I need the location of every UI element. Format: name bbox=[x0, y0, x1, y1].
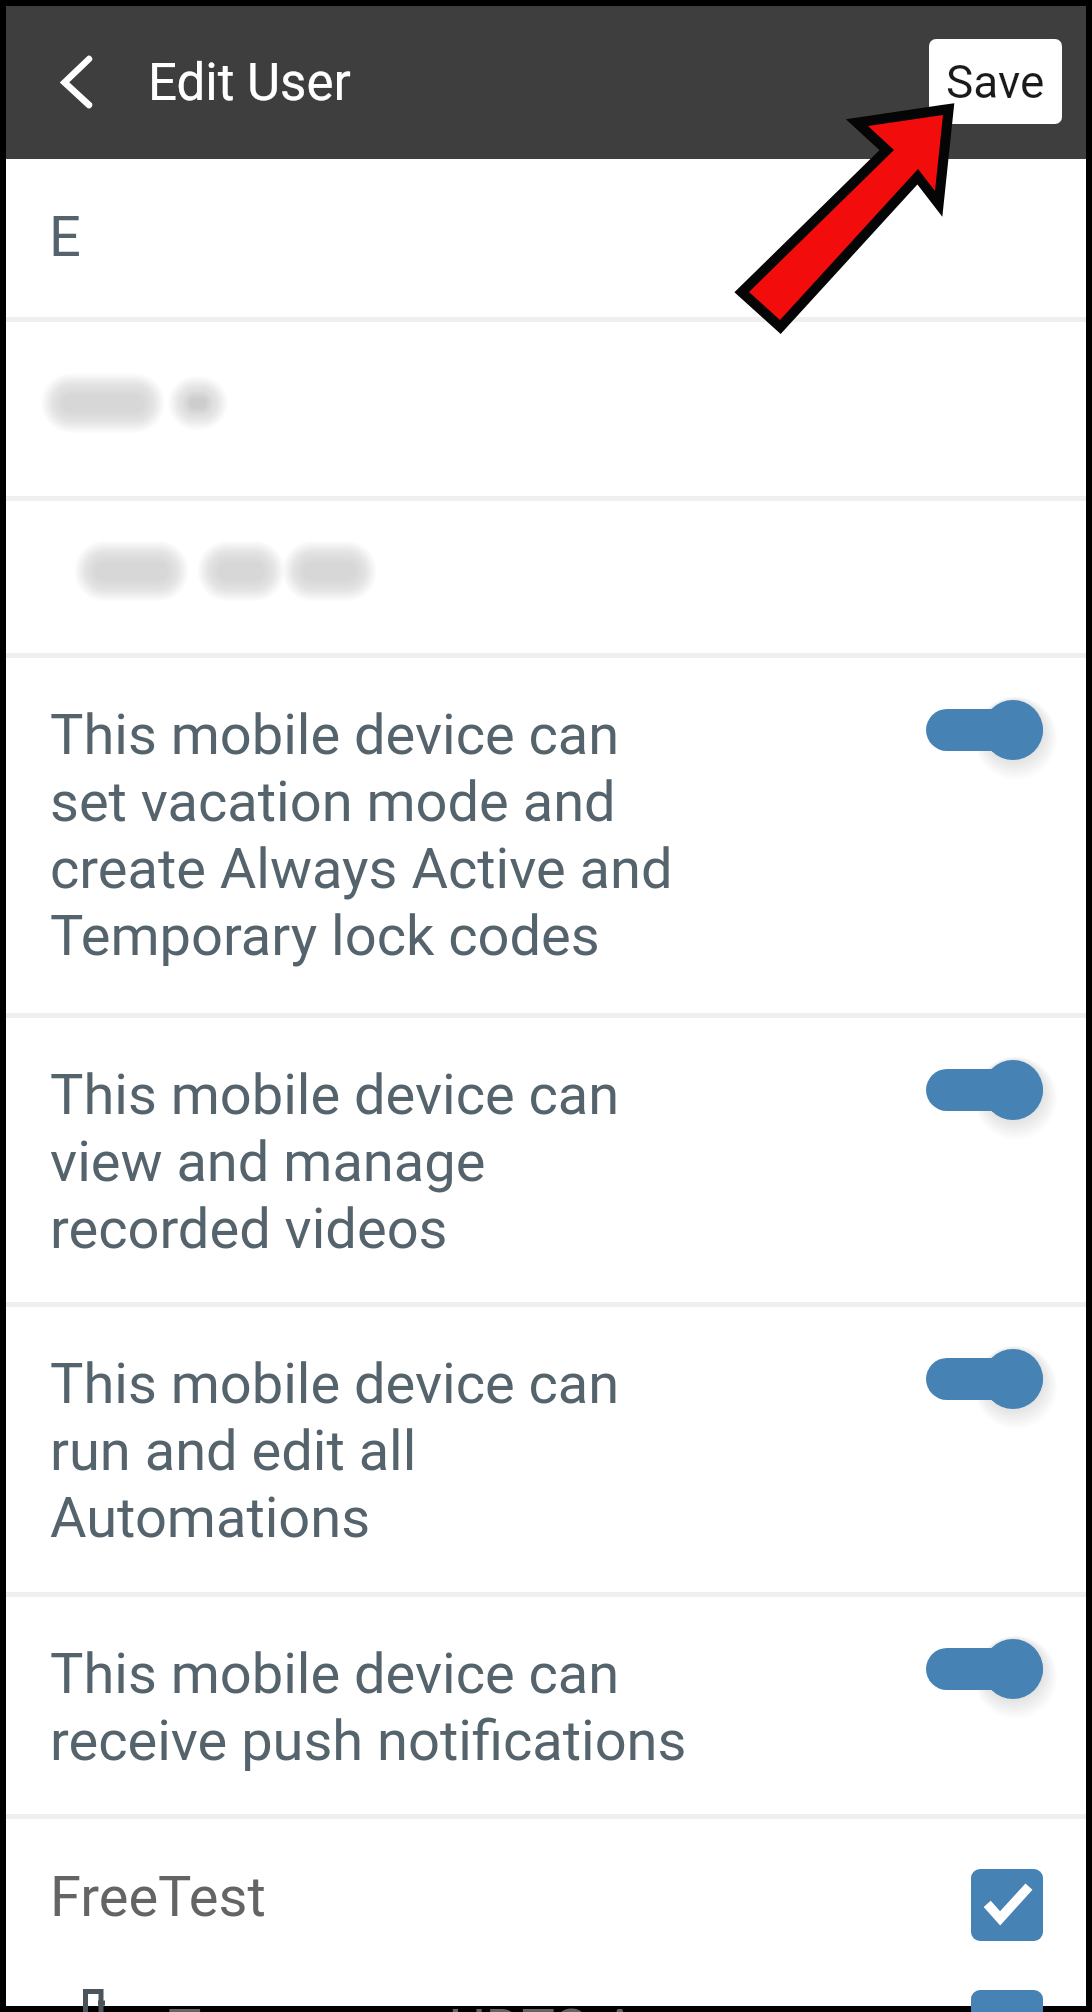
staticText: This mobile device can view and manage r… bbox=[50, 1062, 698, 1262]
button[interactable] bbox=[6, 501, 1086, 653]
staticText: Save bbox=[946, 55, 1045, 109]
button[interactable]: Save bbox=[929, 39, 1062, 124]
staticText: Edit User bbox=[148, 53, 351, 113]
button[interactable]: This mobile device can set vacation mode… bbox=[6, 658, 1086, 1013]
button[interactable]: This mobile device can view and manage r… bbox=[6, 1018, 1086, 1302]
staticText: This mobile device can receive push noti… bbox=[50, 1641, 698, 1774]
button[interactable]: This mobile device can receive push noti… bbox=[6, 1597, 1086, 1814]
button[interactable]: Temporary access checkbox bbox=[971, 1990, 1043, 2012]
button[interactable]: Temporary UDTS Access bbox=[6, 1975, 1086, 2006]
button[interactable] bbox=[6, 322, 1086, 496]
button[interactable]: FreeTest checkbox bbox=[971, 1869, 1043, 1941]
staticText: This mobile device can set vacation mode… bbox=[50, 702, 698, 969]
staticText: This mobile device can run and edit all … bbox=[50, 1351, 698, 1551]
button[interactable]: Back bbox=[24, 22, 124, 143]
button[interactable]: FreeTest bbox=[6, 1819, 1086, 1975]
button[interactable]: This mobile device can run and edit all … bbox=[6, 1307, 1086, 1592]
button[interactable]: E bbox=[6, 159, 1086, 317]
staticText: Temporary UDTS Access bbox=[168, 1997, 785, 2012]
staticText: E bbox=[49, 204, 81, 270]
staticText: FreeTest bbox=[50, 1864, 266, 1930]
